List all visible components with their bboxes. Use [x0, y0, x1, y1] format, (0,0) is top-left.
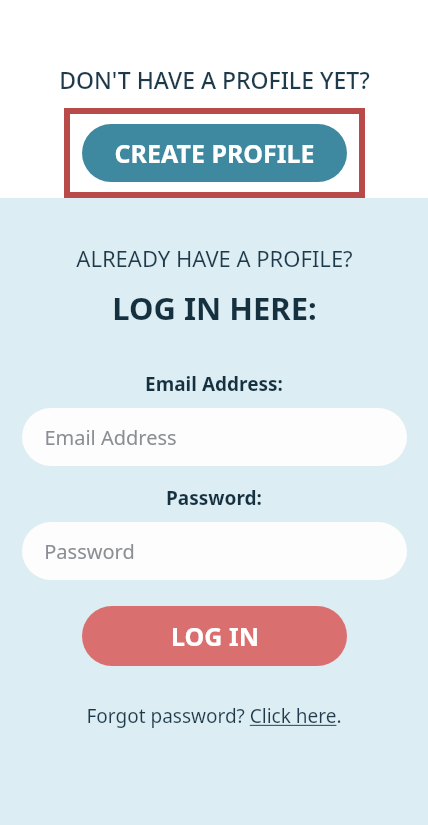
staticText: Password: [166, 485, 262, 511]
staticText: Password [44, 538, 135, 565]
button[interactable]: LOG IN [82, 606, 347, 666]
staticText: Email Address [44, 424, 177, 451]
button[interactable]: Email Address [22, 408, 407, 466]
staticText: LOG IN [171, 619, 259, 653]
button[interactable]: CREATE PROFILE [82, 124, 347, 182]
staticText: Forgot password? Click here. [86, 703, 342, 729]
staticText: LOG IN HERE: [112, 287, 317, 329]
staticText: CREATE PROFILE [114, 136, 315, 170]
button[interactable]: Forgot password? Click here. [78, 699, 350, 733]
button[interactable]: Password [22, 522, 407, 580]
staticText: Email Address: [145, 371, 283, 397]
staticText: DON'T HAVE A PROFILE YET? [59, 64, 370, 95]
staticText: ALREADY HAVE A PROFILE? [76, 243, 353, 273]
